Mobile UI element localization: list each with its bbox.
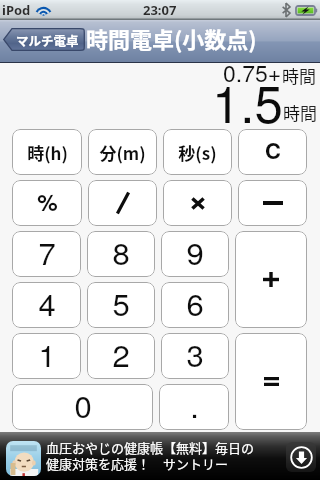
staticText: 2 (112, 333, 130, 375)
staticText: 時間 (283, 100, 317, 125)
button[interactable]: % (12, 180, 82, 226)
button[interactable]: 3 (161, 333, 229, 379)
button[interactable]: 6 (161, 282, 229, 328)
button[interactable]: Multiply (163, 180, 232, 226)
button[interactable]: Download (286, 442, 316, 472)
button[interactable]: Divide (88, 180, 157, 226)
staticText: 時間電卓(小数点) (86, 22, 257, 54)
staticText: 6 (186, 282, 204, 324)
staticText: 時(h) (27, 140, 68, 165)
button[interactable]: 秒(s) (163, 129, 232, 175)
staticText: 0.75+ (223, 56, 282, 89)
staticText: 23:07 (143, 1, 177, 19)
staticText: 3 (186, 333, 204, 375)
staticText: 8 (112, 231, 130, 273)
button[interactable]: 0 (12, 384, 153, 430)
staticText: 7 (38, 231, 56, 273)
button[interactable]: 4 (12, 282, 81, 328)
staticText: % (37, 185, 58, 218)
staticText: iPod (2, 1, 31, 19)
staticText: 9 (186, 231, 204, 273)
button[interactable]: . (159, 384, 229, 430)
button[interactable]: Equals (235, 333, 307, 430)
button[interactable]: 時(h) (12, 129, 82, 175)
staticText: 分(m) (99, 140, 146, 165)
staticText: マルチ電卓 (16, 31, 79, 49)
button[interactable]: 8 (87, 231, 155, 277)
staticText: 0 (74, 384, 92, 426)
staticText: . (190, 384, 199, 426)
staticText: 秒(s) (178, 140, 217, 165)
staticText: 健康対策を応援！ サントリー (46, 454, 229, 473)
staticText: 5 (112, 282, 130, 324)
staticText: C (265, 134, 281, 166)
staticText: 時間 (282, 63, 316, 88)
button[interactable]: 5 (87, 282, 155, 328)
button[interactable]: 7 (12, 231, 81, 277)
staticText: 血圧おやじの健康帳【無料】毎日の (46, 438, 255, 457)
button[interactable]: 2 (87, 333, 155, 379)
button[interactable]: 分(m) (88, 129, 157, 175)
button[interactable]: マルチ電卓 (3, 28, 85, 51)
button[interactable]: C (238, 129, 307, 175)
button[interactable]: Advertisement (0, 432, 320, 480)
staticText: 1 (38, 333, 56, 375)
button[interactable]: 1 (12, 333, 81, 379)
button[interactable]: Minus (238, 180, 307, 226)
button[interactable]: Plus (235, 231, 307, 328)
staticText: 4 (38, 282, 56, 324)
staticText: 1.5 (212, 64, 283, 130)
button[interactable]: 9 (161, 231, 229, 277)
